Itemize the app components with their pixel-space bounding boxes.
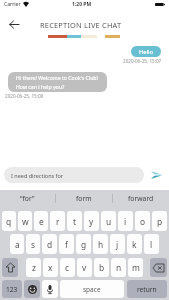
- button[interactable]: f: [59, 234, 74, 254]
- button[interactable]: Dictation: [42, 280, 58, 298]
- staticText: i: [124, 216, 127, 227]
- staticText: form: [76, 194, 92, 203]
- button[interactable]: Shift: [2, 258, 18, 277]
- staticText: p: [157, 216, 163, 227]
- button[interactable]: “for”: [0, 190, 55, 207]
- button[interactable]: g: [76, 234, 91, 254]
- staticText: s: [31, 239, 36, 250]
- staticText: z: [32, 262, 36, 273]
- button[interactable]: q: [2, 211, 16, 231]
- button[interactable]: j: [110, 234, 125, 254]
- staticText: return: [137, 285, 157, 294]
- staticText: k: [132, 239, 137, 250]
- staticText: l: [150, 239, 153, 250]
- staticText: 2020-06-25, 15:08: [5, 93, 44, 99]
- button[interactable]: m: [128, 258, 143, 277]
- button[interactable]: z: [26, 258, 41, 277]
- staticText: v: [82, 262, 87, 273]
- button[interactable]: y: [84, 211, 99, 231]
- button[interactable]: k: [127, 234, 142, 254]
- staticText: e: [39, 216, 44, 227]
- button[interactable]: x: [43, 258, 58, 277]
- staticText: g: [81, 239, 87, 250]
- button[interactable]: w: [18, 211, 32, 231]
- button[interactable]: 123: [2, 280, 22, 298]
- staticText: q: [6, 216, 12, 227]
- button[interactable]: v: [77, 258, 92, 277]
- staticText: Hello: [139, 48, 154, 56]
- button[interactable]: o: [135, 211, 150, 231]
- button[interactable]: Hi there! Welcome to Cook's Club!: [8, 72, 107, 92]
- staticText: 123: [6, 285, 18, 294]
- staticText: r: [56, 216, 60, 227]
- staticText: forward: [128, 194, 154, 203]
- staticText: y: [89, 216, 94, 227]
- button[interactable]: Back: [6, 17, 21, 32]
- button[interactable]: I need directions for: [4, 167, 144, 183]
- button[interactable]: r: [50, 211, 65, 231]
- button[interactable]: Send: [147, 166, 165, 184]
- button[interactable]: u: [101, 211, 116, 231]
- staticText: n: [116, 262, 122, 273]
- button[interactable]: form: [56, 190, 112, 207]
- button[interactable]: h: [93, 234, 108, 254]
- staticText: t: [73, 216, 77, 227]
- button[interactable]: l: [144, 234, 159, 254]
- staticText: m: [132, 262, 140, 273]
- button[interactable]: p: [152, 211, 167, 231]
- staticText: j: [116, 239, 119, 250]
- staticText: Carrier: [4, 1, 21, 8]
- button[interactable]: return: [127, 280, 167, 298]
- staticText: x: [48, 262, 53, 273]
- button[interactable]: c: [60, 258, 75, 277]
- staticText: h: [98, 239, 104, 250]
- staticText: space: [83, 285, 101, 294]
- staticText: I need directions for: [11, 172, 64, 179]
- staticText: w: [22, 216, 29, 227]
- staticText: b: [99, 262, 105, 273]
- staticText: How can i help you?: [16, 83, 65, 90]
- staticText: 2020-06-25, 15:07: [123, 58, 162, 64]
- button[interactable]: b: [94, 258, 109, 277]
- button[interactable]: Backspace: [150, 258, 167, 277]
- button[interactable]: d: [42, 234, 57, 254]
- button[interactable]: s: [26, 234, 40, 254]
- staticText: f: [65, 239, 68, 250]
- button[interactable]: i: [118, 211, 133, 231]
- button[interactable]: e: [34, 211, 48, 231]
- staticText: c: [65, 262, 70, 273]
- button[interactable]: a: [10, 234, 24, 254]
- staticText: RECEPTION LIVE CHAT: [40, 20, 122, 30]
- staticText: Hi there! Welcome to Cook's Club!: [16, 74, 98, 81]
- button[interactable]: forward: [113, 190, 169, 207]
- button[interactable]: n: [111, 258, 126, 277]
- staticText: a: [15, 239, 20, 250]
- staticText: d: [47, 239, 53, 250]
- staticText: u: [106, 216, 112, 227]
- button[interactable]: Emoji: [24, 280, 40, 298]
- staticText: 1:20 PM: [72, 1, 92, 8]
- staticText: o: [140, 216, 146, 227]
- button[interactable]: Hello: [131, 46, 161, 57]
- button[interactable]: space: [60, 280, 124, 298]
- button[interactable]: t: [67, 211, 82, 231]
- staticText: “for”: [20, 194, 35, 203]
